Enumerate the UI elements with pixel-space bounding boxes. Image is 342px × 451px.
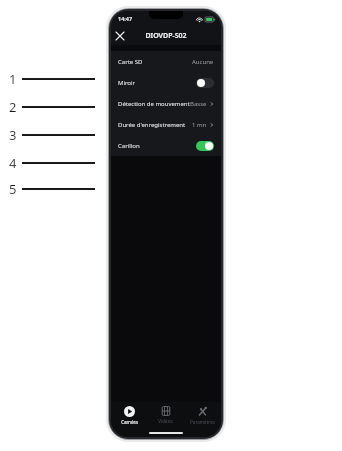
staticText: Durée d'enregistrement [118, 121, 192, 129]
staticText: DIOVDP-S02 [145, 31, 187, 41]
staticText: Paramètres [190, 419, 215, 425]
button[interactable]: Vidéos [147, 402, 184, 428]
button[interactable]: Carillon [111, 135, 221, 156]
staticText: Carillon [118, 142, 196, 150]
button[interactable]: Carte SD [111, 51, 221, 72]
staticText: Carte SD [118, 58, 192, 66]
button[interactable]: Activé [196, 141, 214, 151]
staticText: 3 [9, 126, 17, 144]
button[interactable]: Paramètres [184, 402, 221, 428]
staticText: Miroir [118, 79, 196, 87]
button[interactable]: Durée d'enregistrement [111, 114, 221, 135]
staticText: 4 [9, 154, 17, 172]
staticText: 1 mn [192, 121, 207, 129]
staticText: Vidéos [158, 418, 173, 424]
staticText: 5 [9, 180, 17, 198]
staticText: Détection de mouvement [118, 100, 190, 108]
button[interactable]: Détection de mouvement [111, 93, 221, 114]
button[interactable]: Miroir [111, 72, 221, 93]
button[interactable]: Fermer [111, 27, 129, 45]
staticText: Caméra [121, 419, 138, 425]
staticText: 2 [9, 98, 17, 116]
staticText: 14:47 [118, 15, 133, 22]
staticText: Basse [190, 100, 207, 108]
button[interactable]: Caméra [111, 402, 147, 428]
button[interactable]: Désactivé [196, 78, 214, 88]
staticText: Aucune [192, 58, 214, 66]
staticText: 1 [9, 70, 17, 88]
